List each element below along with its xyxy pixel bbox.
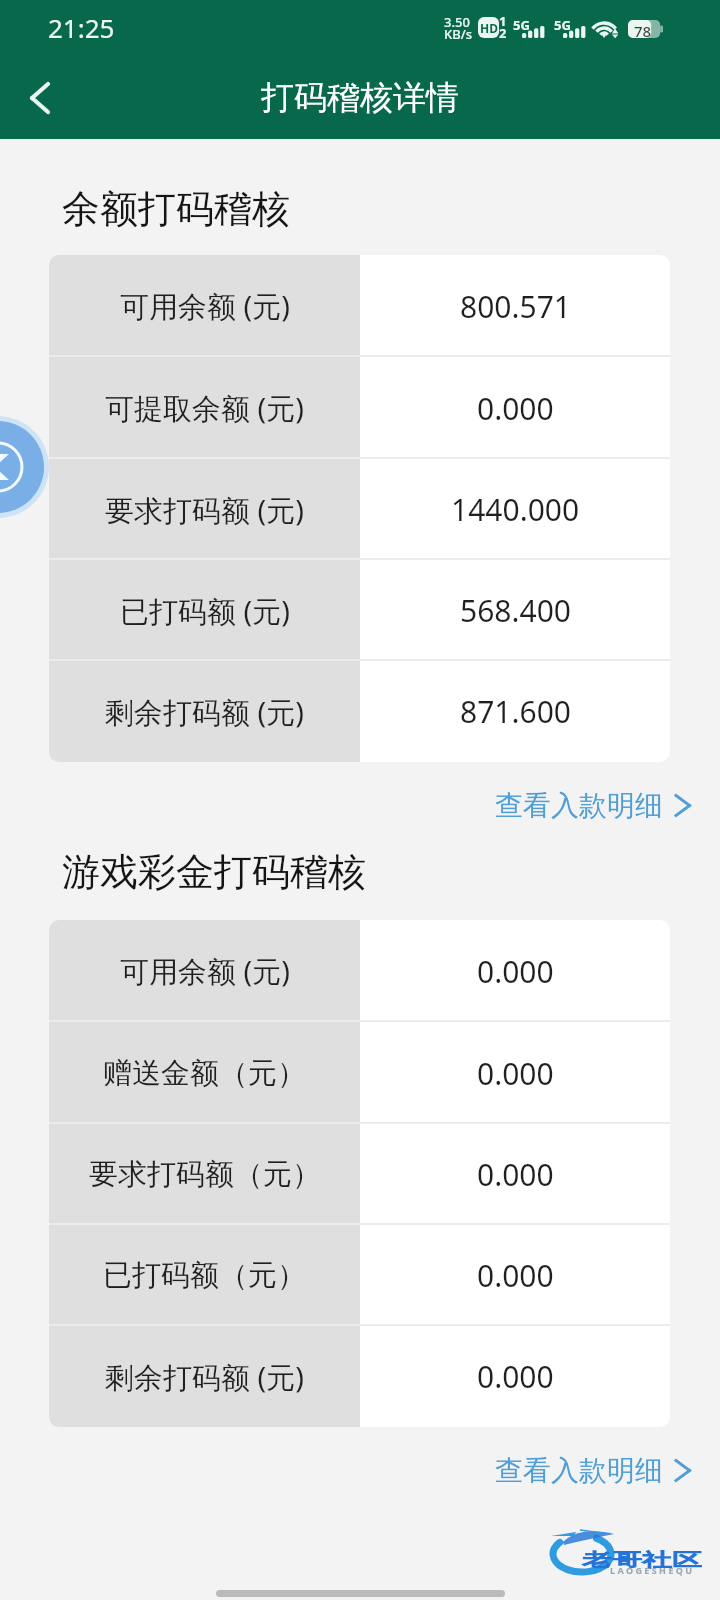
staticText: 0.000 [477, 1154, 554, 1195]
staticText: 0.000 [477, 951, 554, 992]
staticText: 剩余打码额 (元) [105, 1357, 304, 1397]
staticText: 赠送金额（元） [103, 1055, 306, 1092]
staticText: 568.400 [460, 590, 571, 631]
button[interactable]: 查看入款明细 [483, 766, 720, 823]
staticText: 0.000 [477, 1255, 554, 1296]
button[interactable]: 查看入款明细 [483, 1431, 720, 1488]
staticText: 0.000 [477, 388, 554, 429]
staticText: 2 [499, 24, 507, 42]
staticText: 0.000 [477, 1356, 554, 1397]
button[interactable]: Back [0, 56, 79, 139]
staticText: 已打码额 (元) [120, 591, 290, 631]
staticText: 查看入款明细 [495, 788, 663, 823]
staticText: 可提取余额 (元) [105, 388, 304, 428]
staticText: 剩余打码额 (元) [105, 692, 304, 732]
staticText: LAOGESHEQU [610, 1564, 695, 1576]
staticText: 可用余额 (元) [120, 951, 290, 991]
staticText: 871.600 [460, 691, 571, 732]
staticText: 要求打码额 (元) [105, 490, 304, 530]
staticText: 打码稽核详情 [261, 77, 459, 119]
staticText: 老哥社区 [582, 1549, 702, 1571]
staticText: 3.50 [444, 13, 470, 31]
staticText: 余额打码稽核 [62, 185, 290, 233]
staticText: 78 [634, 21, 652, 41]
staticText: KB/s [444, 25, 473, 43]
staticText: 可用余额 (元) [120, 286, 290, 326]
staticText: 游戏彩金打码稽核 [62, 848, 366, 896]
staticText: 要求打码额（元） [89, 1156, 321, 1193]
staticText: HD [480, 20, 498, 36]
staticText: 5G [554, 16, 571, 34]
staticText: 21:25 [48, 10, 115, 45]
button[interactable]: Back [0, 414, 51, 520]
staticText: 800.571 [460, 286, 571, 327]
staticText: 已打码额（元） [103, 1257, 306, 1294]
staticText: 1440.000 [451, 489, 580, 530]
staticText: 查看入款明细 [495, 1453, 663, 1488]
staticText: 0.000 [477, 1053, 554, 1094]
staticText: 1 [499, 12, 507, 30]
staticText: 5G [513, 16, 530, 34]
